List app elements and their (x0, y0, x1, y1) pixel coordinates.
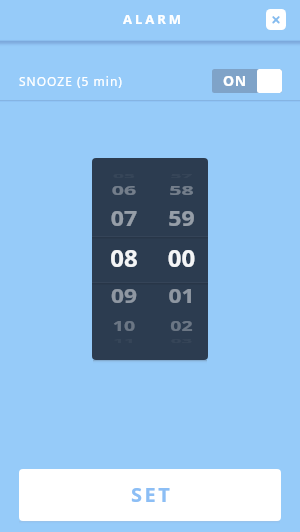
staticText: 03 (159, 336, 204, 344)
button[interactable]: Close (266, 9, 286, 30)
staticText: 01 (154, 282, 208, 309)
staticText: 06 (98, 181, 150, 198)
staticText: 09 (96, 282, 151, 309)
staticText: 10 (100, 316, 148, 335)
staticText: SNOOZE (5 min) (19, 73, 123, 89)
staticText: 59 (154, 203, 208, 232)
staticText: 58 (156, 181, 207, 198)
staticText: 02 (158, 316, 205, 335)
staticText: 08 (95, 241, 153, 274)
staticText: 05 (101, 172, 147, 179)
staticText: ALARM (123, 10, 185, 28)
button[interactable]: SET (19, 469, 281, 521)
button[interactable]: SNOOZE (5 min) (0, 47, 300, 100)
staticText: 57 (159, 172, 204, 179)
button[interactable]: ON (212, 69, 282, 93)
staticText: 00 (153, 241, 208, 274)
button[interactable]: 05 (92, 158, 208, 360)
staticText: ON (223, 71, 248, 90)
staticText: 07 (96, 203, 152, 232)
staticText: SET (131, 481, 173, 508)
